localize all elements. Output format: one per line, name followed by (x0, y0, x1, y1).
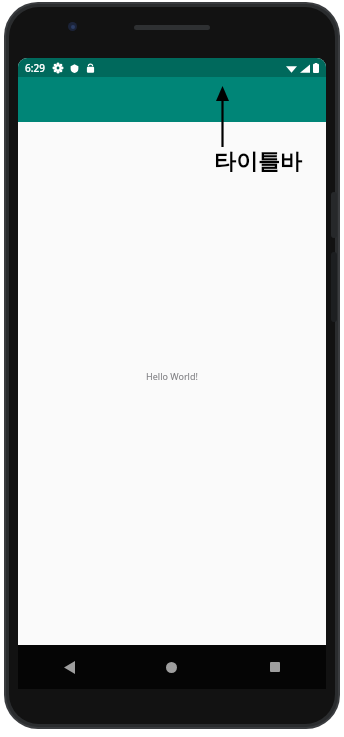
staticText: 6:29 (25, 61, 45, 75)
button[interactable]: Recent apps (223, 645, 326, 689)
staticText: 타이틀바 (214, 148, 302, 176)
button[interactable]: Home (120, 645, 223, 689)
staticText: Hello World! (146, 370, 198, 382)
button[interactable] (18, 77, 326, 122)
button[interactable]: Back (18, 645, 120, 689)
